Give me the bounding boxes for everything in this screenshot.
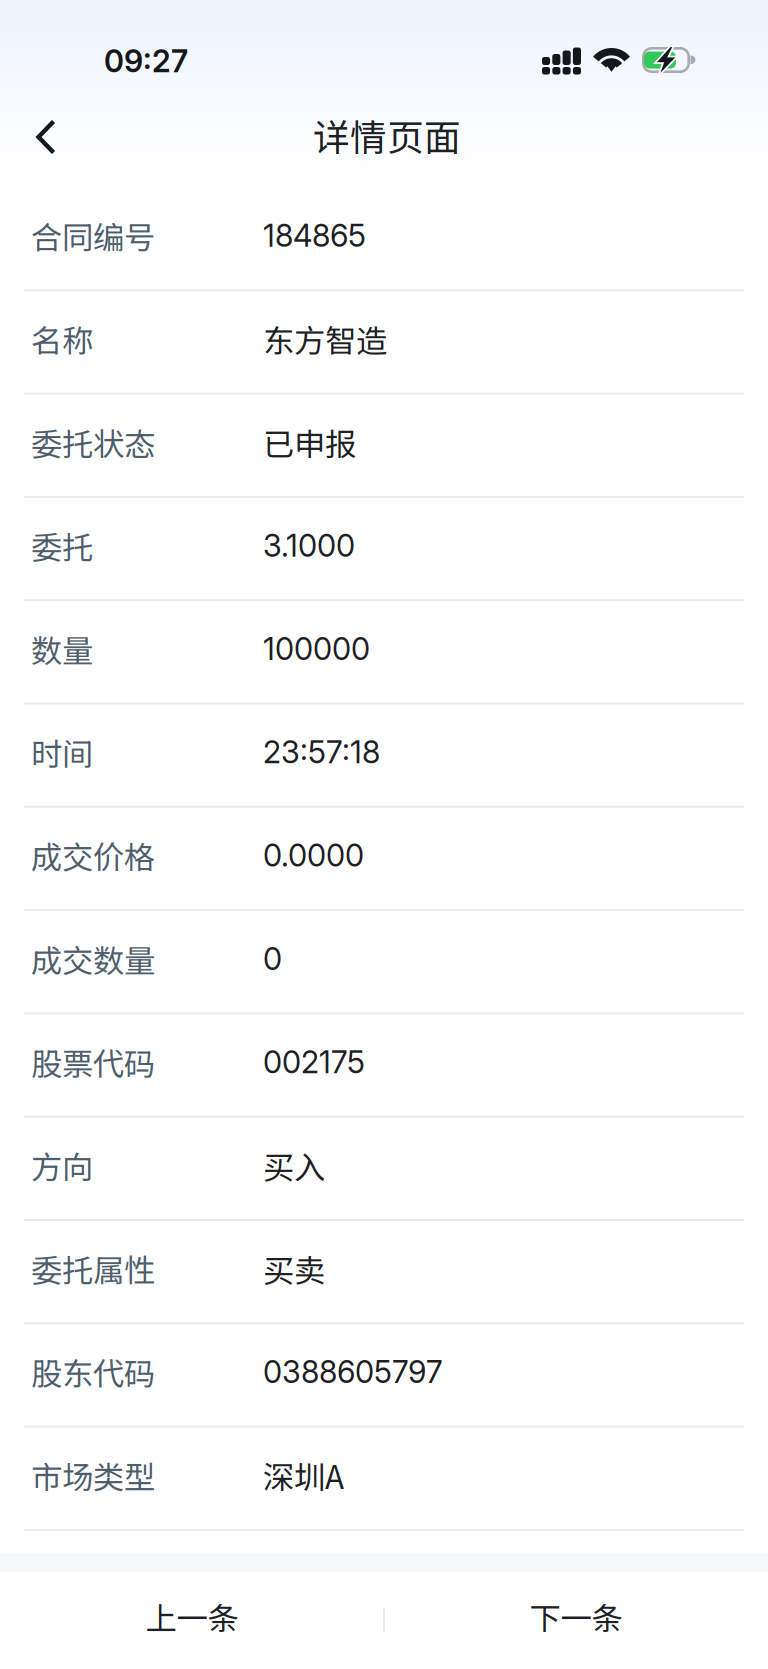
staticText: 100000 [263, 630, 370, 667]
staticText: 09:27 [104, 42, 188, 79]
staticText: 上一条 [145, 1594, 238, 1639]
staticText: 买入 [263, 1143, 325, 1188]
staticText: 股东代码 [31, 1349, 155, 1395]
staticText: 23:57:18 [263, 734, 380, 771]
staticText: 0.0000 [263, 837, 364, 874]
staticText: 成交数量 [31, 936, 155, 981]
staticText: 东方智造 [263, 316, 387, 362]
staticText: 买卖 [263, 1246, 325, 1291]
staticText: 下一条 [529, 1594, 622, 1639]
staticText: 成交价格 [31, 833, 155, 878]
staticText: 时间 [31, 729, 93, 775]
staticText: 0 [263, 940, 282, 977]
staticText: 数量 [31, 626, 93, 672]
staticText: 002175 [263, 1043, 365, 1081]
button[interactable]: 下一条 [384, 1572, 768, 1661]
staticText: 委托状态 [31, 420, 155, 465]
button[interactable]: Back [12, 102, 80, 178]
staticText: 市场类型 [31, 1453, 155, 1498]
staticText: 184865 [263, 217, 366, 254]
staticText: 0388605797 [263, 1353, 443, 1390]
staticText: 方向 [31, 1143, 93, 1188]
staticText: 已申报 [263, 420, 356, 465]
staticText: 深圳A [263, 1453, 344, 1498]
staticText: 委托属性 [31, 1246, 155, 1291]
staticText: 详情页面 [313, 108, 461, 162]
staticText: 委托 [31, 523, 93, 568]
staticText: 合同编号 [31, 213, 155, 258]
staticText: 名称 [31, 316, 93, 362]
staticText: 股票代码 [31, 1039, 155, 1085]
button[interactable]: 上一条 [0, 1572, 384, 1661]
staticText: 3.1000 [263, 527, 355, 564]
